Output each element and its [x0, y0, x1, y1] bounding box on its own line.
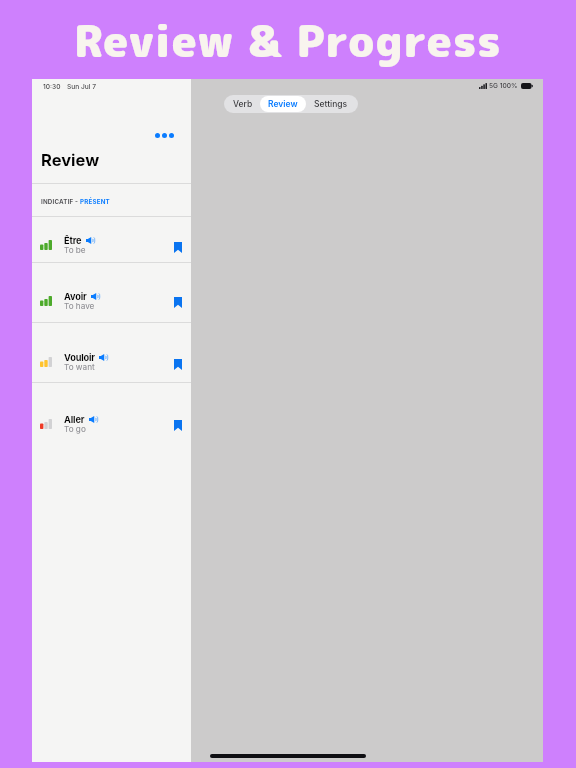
button[interactable]: Bookmark Avoir: [171, 294, 185, 311]
staticText: Review: [268, 99, 298, 109]
staticText: To be: [64, 245, 86, 255]
button[interactable]: Aller: [32, 383, 191, 443]
button[interactable]: Bookmark Aller: [171, 417, 185, 434]
button[interactable]: Vouloir: [32, 323, 191, 383]
staticText: To go: [64, 424, 86, 434]
staticText: Vouloir: [64, 352, 95, 363]
staticText: To have: [64, 301, 95, 311]
staticText: 5G 100%: [489, 82, 518, 90]
staticText: Être: [64, 235, 82, 246]
staticText: Aller: [64, 414, 85, 425]
staticText: Settings: [314, 99, 348, 109]
button[interactable]: Bookmark Être: [171, 239, 185, 256]
staticText: Avoir: [64, 291, 87, 302]
button[interactable]: Bookmark Vouloir: [171, 356, 185, 373]
staticText: Verb: [233, 99, 253, 109]
button[interactable]: Avoir: [32, 263, 191, 323]
button[interactable]: More options: [151, 129, 178, 142]
button[interactable]: Être: [32, 217, 191, 263]
staticText: PRÉSENT: [80, 198, 110, 206]
staticText: Review: [41, 150, 100, 170]
button[interactable]: Settings: [306, 96, 356, 112]
button[interactable]: Verb: [226, 96, 260, 112]
staticText: INDICATIF -: [41, 198, 80, 206]
button[interactable]: Review: [260, 96, 306, 112]
staticText: Sun Jul 7: [67, 83, 96, 91]
staticText: To want: [64, 362, 95, 372]
staticText: Review & Progress: [74, 11, 502, 71]
staticText: 10:30: [43, 83, 61, 91]
